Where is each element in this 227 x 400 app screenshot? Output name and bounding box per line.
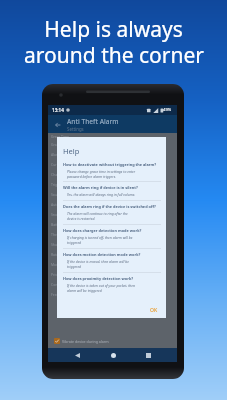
staticText: More apps from us	[51, 262, 82, 267]
staticText: If the device is moved, then alarm will …	[67, 259, 137, 269]
staticText: Battery optimization	[51, 222, 84, 227]
staticText: Change password	[51, 172, 80, 177]
staticText: 13:14	[52, 107, 64, 113]
staticText: Share with friends	[51, 242, 80, 247]
staticText: Alarm volume	[51, 152, 74, 157]
staticText: Privacy policy	[51, 272, 73, 277]
staticText: Theme	[51, 232, 62, 237]
staticText: If charging is turned off, then alarm wi…	[67, 235, 137, 245]
staticText: Trigger mode	[51, 182, 73, 187]
staticText: Help is always	[44, 15, 183, 44]
staticText: Does the alarm ring if the device is swi…	[63, 204, 156, 209]
staticText: How does proximity detection work?	[63, 276, 134, 281]
staticText: Will the alarm ring if device is in sile…	[63, 185, 138, 190]
button[interactable]: Recents	[141, 348, 155, 362]
staticText: How to deactivate without triggering the…	[63, 162, 157, 167]
staticText: Grace Time	[51, 134, 69, 139]
staticText: How does charger detection mode work?	[63, 228, 142, 233]
staticText: Sound selection	[51, 192, 77, 197]
button[interactable]: OK	[147, 305, 161, 316]
button[interactable]: Back	[70, 348, 84, 362]
staticText: OK	[150, 307, 158, 314]
staticText: Help	[63, 146, 80, 156]
staticText: Current password	[51, 162, 80, 167]
staticText: The alarm will continue to ring after th…	[67, 211, 137, 221]
button[interactable]: Back	[48, 116, 67, 133]
staticText: 49%	[163, 107, 172, 113]
staticText: Snooze duration	[51, 212, 78, 217]
staticText: Please change grace time in settings to …	[67, 169, 137, 179]
staticText: If the device is taken out of your pocke…	[67, 283, 137, 293]
staticText: How does motion detection mode work?	[63, 252, 141, 257]
staticText: Vibrate device during alarm	[62, 339, 109, 344]
staticText: Settings	[67, 126, 84, 132]
staticText: Yes, the alarm will always ring in full …	[67, 192, 136, 197]
staticText: Anti Theft Alarm	[67, 117, 119, 126]
staticText: Rate the app	[51, 252, 72, 257]
staticText: Grace time before alarm	[51, 142, 90, 147]
staticText: Auto start	[51, 202, 67, 207]
button[interactable]: Vibrate device during alarm	[54, 338, 109, 344]
staticText: Feedback	[51, 292, 67, 297]
button[interactable]: Home	[106, 348, 120, 362]
staticText: around the corner	[24, 41, 204, 70]
staticText: Contact developer	[51, 282, 81, 287]
